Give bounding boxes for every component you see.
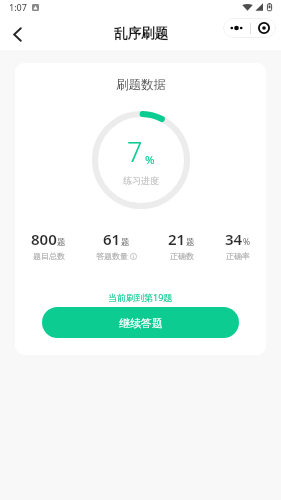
staticText: 题 (121, 237, 130, 248)
staticText: 34 (225, 229, 243, 249)
button[interactable]: 继续答题 (42, 307, 239, 338)
staticText: % (145, 152, 155, 168)
staticText: 800 (31, 229, 57, 249)
staticText: 刷题数据 (116, 77, 166, 93)
staticText: 21 (168, 229, 186, 249)
button[interactable]: Close mini program (251, 18, 276, 38)
staticText: 答题数量 (96, 251, 128, 261)
button[interactable]: Back (1, 18, 34, 50)
staticText: 当前刷到第19题 (108, 291, 173, 303)
staticText: 正确率 (226, 251, 250, 261)
staticText: 练习进度 (123, 175, 159, 186)
staticText: 7 (127, 133, 143, 170)
staticText: 题目总数 (33, 251, 65, 261)
staticText: % (243, 236, 251, 248)
staticText: 题 (57, 237, 66, 248)
staticText: 乱序刷题 (114, 25, 168, 42)
staticText: 61 (103, 229, 121, 249)
staticText: 题 (186, 237, 195, 248)
staticText: 1:07 (9, 1, 27, 13)
staticText: 正确数 (170, 251, 194, 261)
staticText: 继续答题 (119, 316, 163, 330)
button[interactable]: More options (223, 18, 250, 38)
